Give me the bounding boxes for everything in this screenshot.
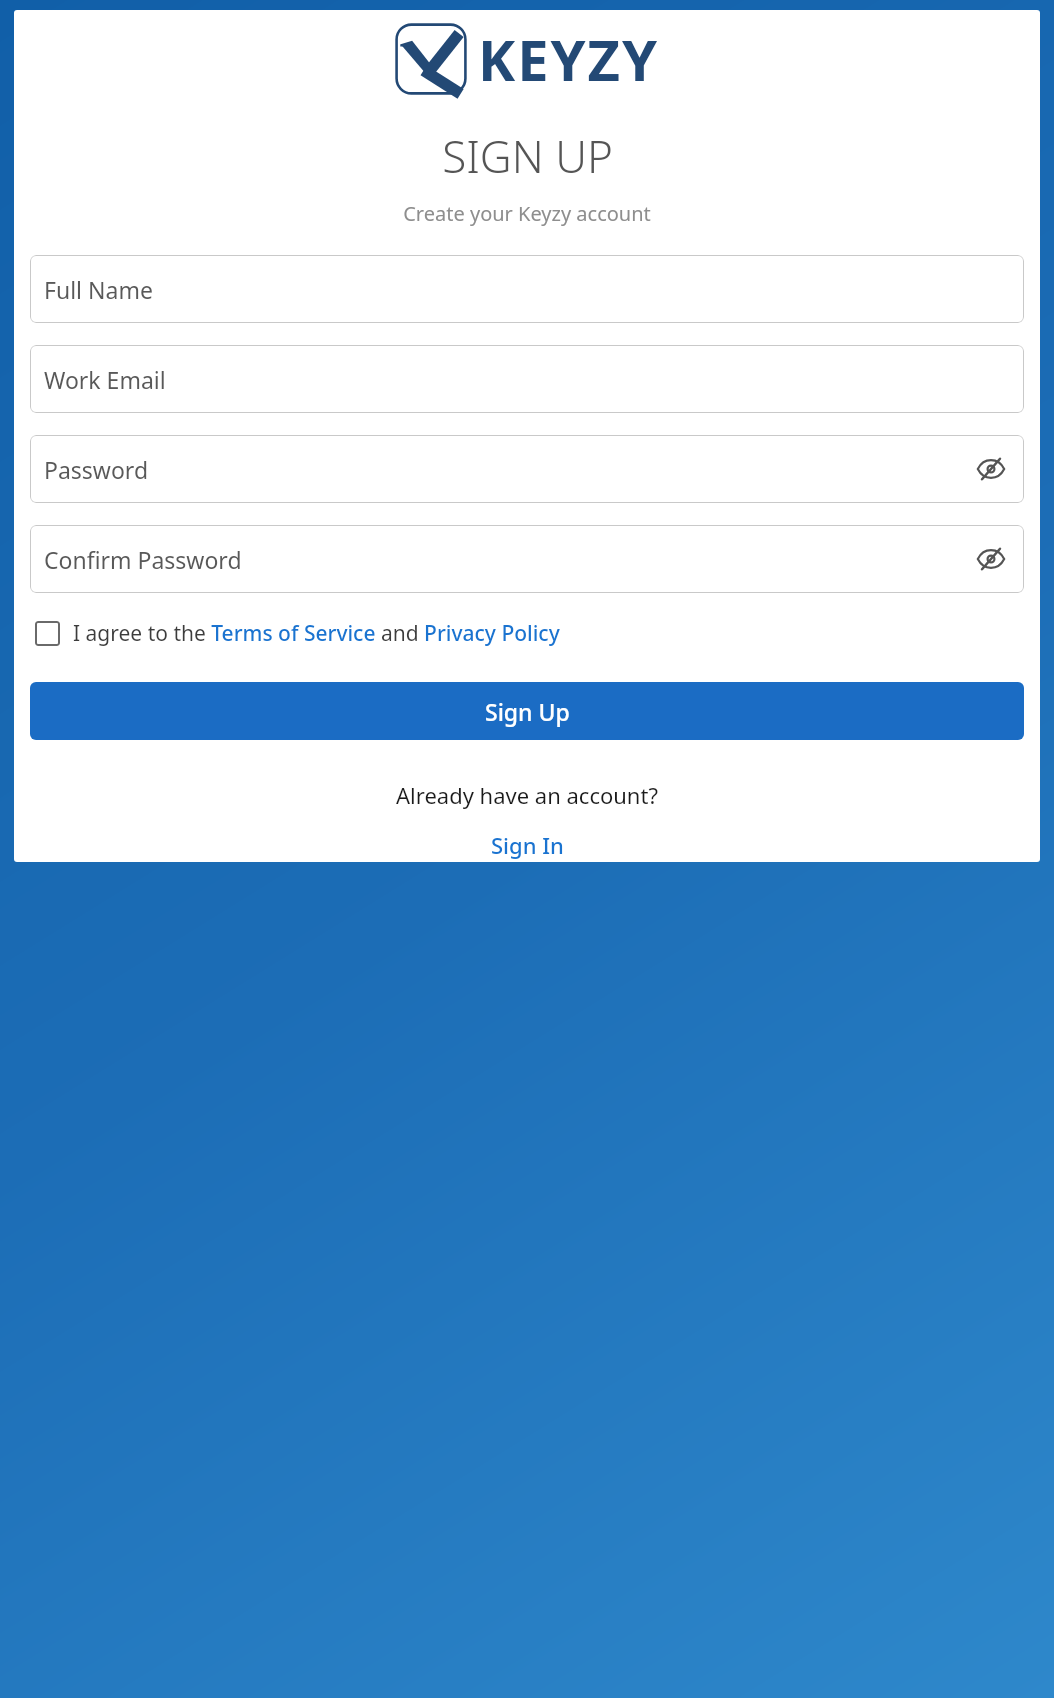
button[interactable]: Confirm Password	[30, 525, 1024, 593]
staticText: SIGN UP	[442, 126, 613, 186]
staticText: Create your Keyzy account	[403, 200, 651, 227]
button[interactable]: Show password	[972, 540, 1010, 578]
staticText: KEYZY	[478, 21, 660, 97]
staticText: Confirm Password	[44, 544, 242, 575]
staticText: Sign Up	[485, 696, 570, 727]
button[interactable]: I agree to the Terms of Service and Priv…	[30, 619, 1024, 648]
button[interactable]: Password	[30, 435, 1024, 503]
staticText: I agree to the Terms of Service and Priv…	[73, 619, 560, 648]
button[interactable]: Work Email	[30, 345, 1024, 413]
button[interactable]: Show password	[972, 450, 1010, 488]
staticText: Sign In	[491, 830, 564, 860]
button[interactable]: Full Name	[30, 255, 1024, 323]
staticText: Work Email	[44, 364, 166, 395]
staticText: Already have an account?	[396, 780, 658, 810]
staticText: Full Name	[44, 274, 153, 305]
button[interactable]: Sign Up	[30, 682, 1024, 740]
button[interactable]: Sign In	[481, 828, 574, 862]
staticText: Password	[44, 454, 149, 485]
